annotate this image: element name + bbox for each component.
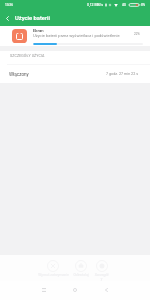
staticText: Użycie baterii [15,15,50,22]
staticText: 7 godz. 27 min 22 s [106,72,139,76]
staticText: 13:36 [5,3,13,7]
staticText: Wymuś zatrzymanie [38,273,69,277]
staticText: Odinstaluj [73,273,89,277]
button[interactable]: Szczegóły [94,260,109,281]
staticText: 22% [134,32,140,36]
staticText: SZCZEGÓŁY UŻYCIA [10,54,45,58]
staticText: 0,12 MB/s [87,3,103,7]
staticText: 8% [141,3,146,7]
button[interactable]: Włączony [0,65,150,83]
staticText: Ekran [33,28,44,33]
staticText: 4G [122,3,126,7]
button[interactable]: Ekran główny [65,281,85,300]
staticText: Użycie baterii przez wyświetlacz i podśw… [33,33,120,38]
staticText: Szczegóły [94,273,109,281]
staticText: Włączony [9,72,29,77]
button[interactable]: Wstecz [0,11,14,25]
button[interactable]: Wymuś zatrzymanie [36,260,70,277]
button[interactable]: Ekran [0,26,150,46]
button[interactable]: Ostatnie aplikacje [34,281,54,300]
button[interactable]: Odinstaluj [73,260,89,277]
